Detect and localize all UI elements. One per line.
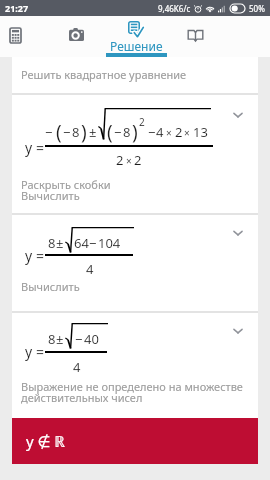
staticText: ± xyxy=(56,330,64,348)
staticText: y xyxy=(25,246,33,265)
staticText: ) xyxy=(132,119,138,145)
staticText: × xyxy=(184,126,190,140)
staticText: ± xyxy=(89,123,97,141)
staticText: 4 xyxy=(73,358,81,376)
button[interactable]: y xyxy=(12,215,258,311)
staticText: Выражение не определено на множестве xyxy=(21,379,243,394)
staticText: = xyxy=(36,342,45,361)
staticText: 8 xyxy=(48,234,56,252)
staticText: 8 xyxy=(48,330,56,348)
staticText: ( xyxy=(56,119,62,145)
staticText: = xyxy=(36,138,45,157)
button[interactable]: Reference book xyxy=(166,16,227,57)
staticText: 2 xyxy=(116,151,124,169)
button[interactable]: Решение xyxy=(106,16,167,57)
staticText: 8 xyxy=(123,123,131,141)
staticText: − xyxy=(114,123,122,141)
staticText: 2 xyxy=(139,115,145,129)
staticText: 8 xyxy=(72,123,80,141)
staticText: − xyxy=(45,123,53,141)
staticText: Раскрыть скобки xyxy=(21,177,111,192)
staticText: 2 xyxy=(134,151,142,169)
staticText: ) xyxy=(81,119,87,145)
staticText: 4 xyxy=(86,260,94,278)
staticText: 2 xyxy=(175,123,183,141)
staticText: × xyxy=(166,126,172,140)
staticText: Вычислить xyxy=(21,188,80,203)
button[interactable]: y ∉ ℝ xyxy=(12,418,258,464)
staticText: y xyxy=(25,342,33,361)
button[interactable]: Решить квадратное уравнение xyxy=(12,57,258,93)
staticText: ( xyxy=(107,119,113,145)
staticText: Решить квадратное уравнение xyxy=(21,67,187,82)
staticText: y xyxy=(25,138,33,157)
button[interactable]: y xyxy=(12,95,258,213)
staticText: 64 xyxy=(74,234,89,252)
staticText: ± xyxy=(56,234,64,252)
staticText: − xyxy=(148,123,156,141)
button[interactable]: Calculator xyxy=(0,16,46,57)
staticText: × xyxy=(126,154,132,168)
staticText: 9,46K6/c xyxy=(158,3,191,14)
staticText: 21:27 xyxy=(5,2,29,14)
staticText: 40 xyxy=(84,330,99,348)
staticText: − xyxy=(75,330,83,348)
staticText: 4 xyxy=(156,123,164,141)
staticText: − xyxy=(63,123,71,141)
staticText: 50% xyxy=(249,3,265,14)
staticText: 104 xyxy=(98,234,121,252)
staticText: действительных чисел xyxy=(21,390,143,405)
staticText: y ∉ ℝ xyxy=(26,431,66,451)
button[interactable]: y xyxy=(12,313,258,418)
staticText: Вычислить xyxy=(21,279,80,294)
button[interactable]: Camera xyxy=(46,16,107,57)
staticText: 13 xyxy=(193,123,208,141)
staticText: = xyxy=(36,246,45,265)
staticText: − xyxy=(89,234,97,252)
staticText: Решение xyxy=(110,38,163,54)
